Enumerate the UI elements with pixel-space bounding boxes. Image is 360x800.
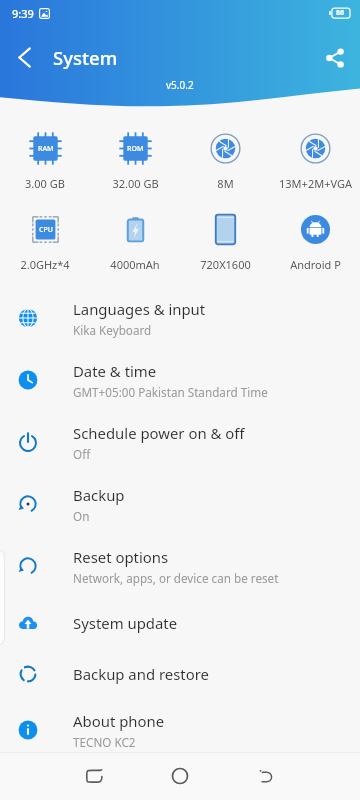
- staticText: Backup and restore: [73, 664, 209, 684]
- staticText: RAM: [38, 144, 54, 154]
- button[interactable]: Recents: [223, 752, 309, 800]
- button[interactable]: Home: [137, 752, 223, 800]
- staticText: Schedule power on & off: [73, 423, 245, 443]
- staticText: CPU: [39, 225, 53, 235]
- staticText: Reset options: [73, 547, 169, 567]
- button[interactable]: Backup: [0, 473, 360, 535]
- button[interactable]: System update: [0, 597, 360, 648]
- button[interactable]: Share: [310, 34, 360, 81]
- staticText: 86: [336, 8, 345, 18]
- button[interactable]: Backup and restore: [0, 648, 360, 699]
- button[interactable]: Languages & input: [0, 287, 360, 349]
- button[interactable]: Date & time: [0, 349, 360, 411]
- button[interactable]: Back: [51, 752, 137, 800]
- staticText: 9:39: [12, 6, 34, 21]
- staticText: v5.0.2: [166, 78, 194, 92]
- staticText: ROM: [127, 144, 144, 154]
- staticText: 2.0GHz*4: [20, 257, 70, 272]
- button[interactable]: Back: [0, 34, 48, 81]
- staticText: TECNO KC2: [73, 734, 136, 750]
- button[interactable]: Schedule power on & off: [0, 411, 360, 473]
- staticText: Date & time: [73, 361, 157, 381]
- staticText: 720X1600: [200, 257, 251, 272]
- staticText: 32.00 GB: [112, 176, 159, 191]
- staticText: Android P: [290, 257, 341, 272]
- staticText: Languages & input: [73, 299, 206, 319]
- button[interactable]: Reset options: [0, 535, 360, 597]
- button[interactable]: About phone: [0, 699, 360, 761]
- staticText: System update: [73, 613, 178, 633]
- staticText: System: [53, 45, 118, 70]
- staticText: 4000mAh: [110, 257, 160, 272]
- staticText: 3.00 GB: [25, 176, 65, 191]
- staticText: Network, apps, or device can be reset: [73, 570, 279, 586]
- staticText: Backup: [73, 485, 125, 505]
- staticText: GMT+05:00 Pakistan Standard Time: [73, 384, 268, 400]
- staticText: About phone: [73, 711, 165, 731]
- staticText: 13M+2M+VGA: [279, 176, 352, 191]
- staticText: Kika Keyboard: [73, 322, 152, 338]
- staticText: On: [73, 508, 90, 524]
- staticText: Off: [73, 446, 91, 462]
- staticText: 8M: [217, 176, 234, 191]
